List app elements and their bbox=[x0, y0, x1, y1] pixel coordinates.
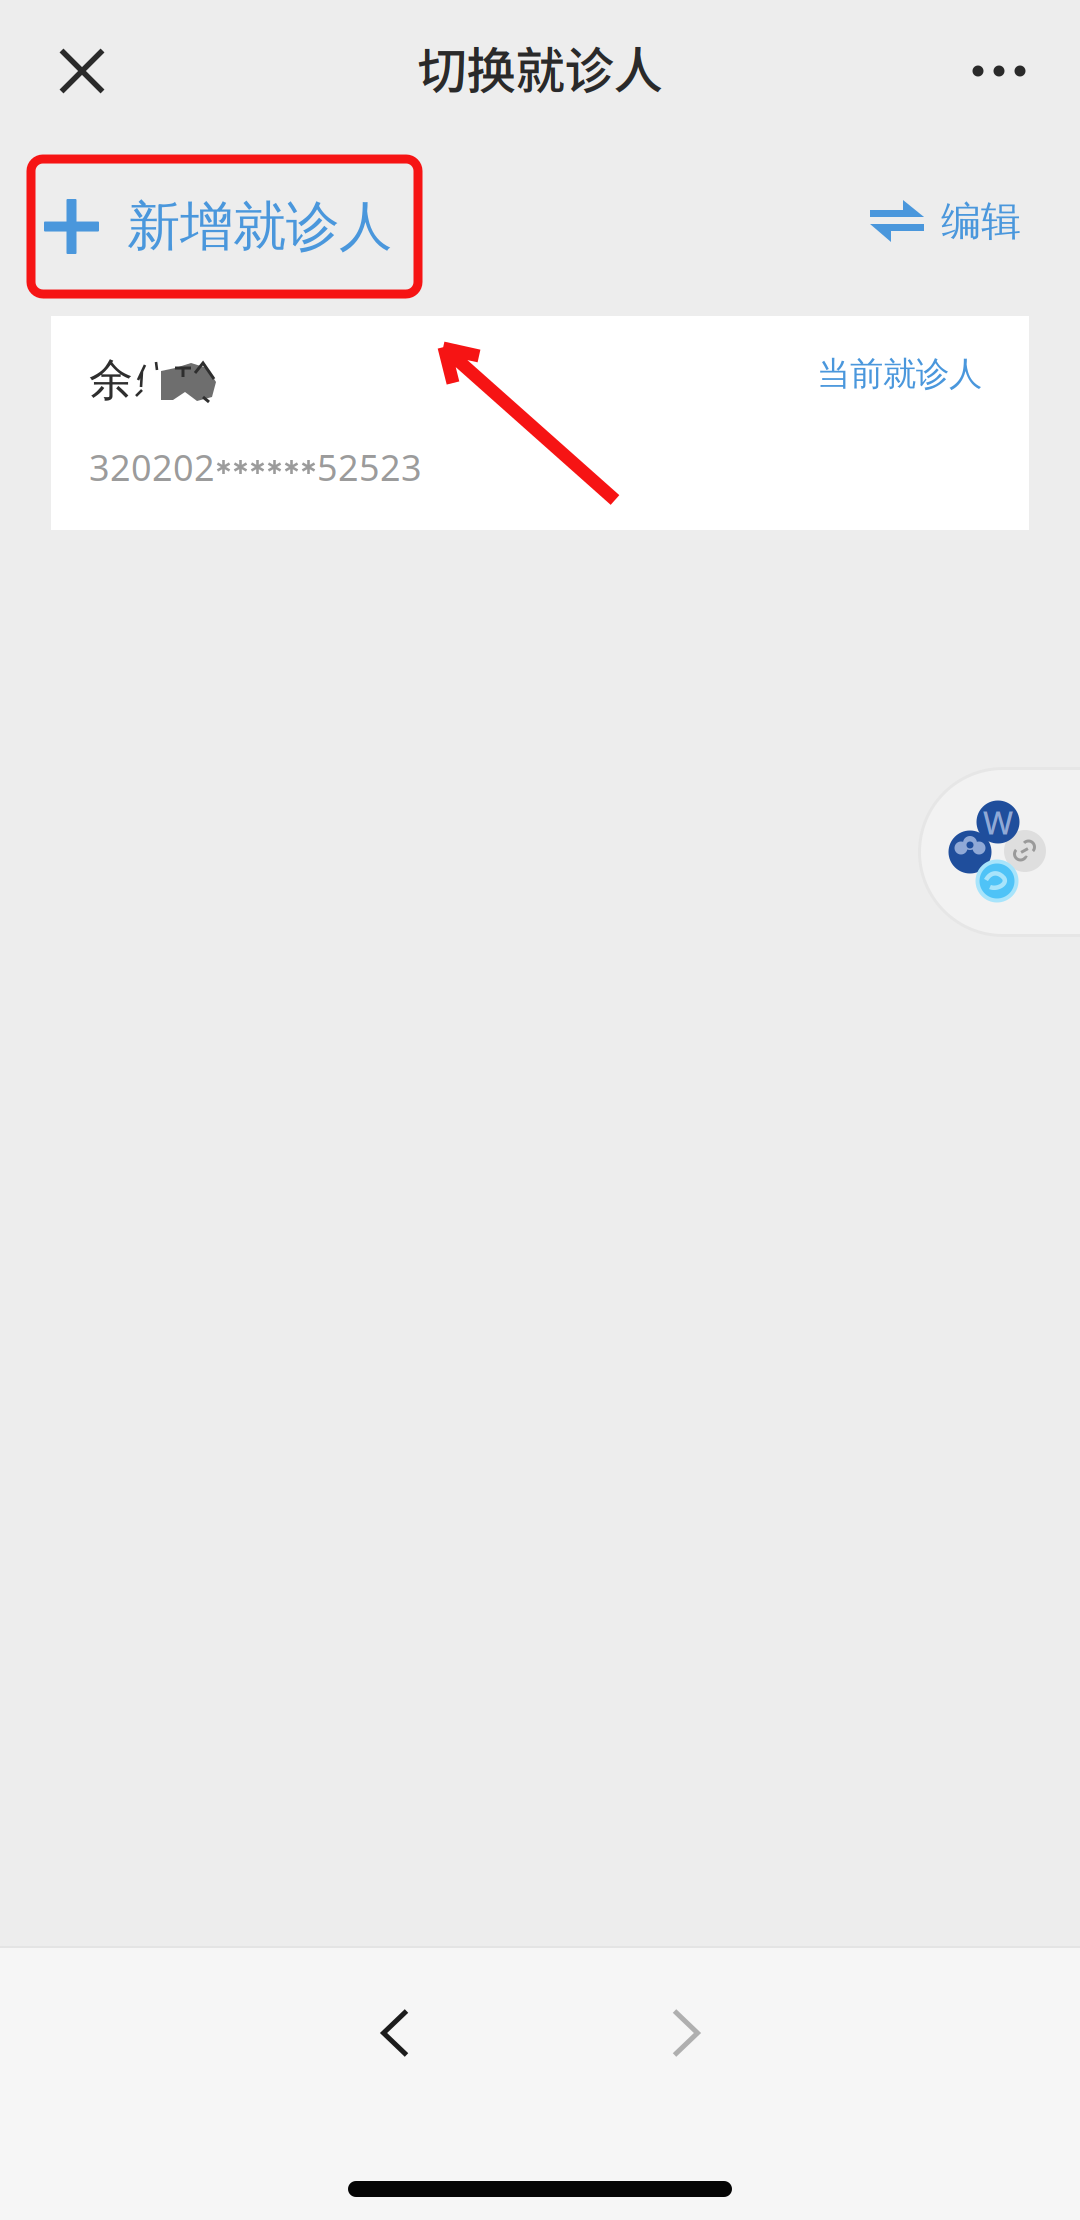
button[interactable]: 余 bbox=[51, 316, 1029, 530]
staticText: 切换就诊人 bbox=[417, 31, 662, 103]
staticText: 编辑 bbox=[941, 197, 1021, 246]
staticText: 当前就诊人 bbox=[817, 353, 982, 394]
button[interactable]: More bbox=[945, 11, 1053, 131]
button[interactable]: Close bbox=[21, 11, 143, 131]
button[interactable]: 编辑 bbox=[848, 159, 1043, 293]
staticText: W bbox=[983, 801, 1013, 843]
staticText: 新增就诊人 bbox=[127, 194, 392, 259]
button[interactable]: Back bbox=[339, 1978, 451, 2088]
staticText: 余 bbox=[89, 353, 133, 407]
button[interactable]: Recent mini programs bbox=[918, 767, 1080, 937]
button[interactable]: 新增就诊人 bbox=[31, 159, 418, 294]
staticText: 320202 bbox=[89, 443, 215, 491]
button[interactable]: Forward bbox=[630, 1978, 742, 2088]
staticText: 52523 bbox=[317, 443, 422, 491]
